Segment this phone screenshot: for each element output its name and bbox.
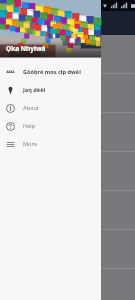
staticText: Ọka Nhyiwà (6, 44, 46, 53)
button[interactable]: Dh (0, 74, 135, 112)
button[interactable]: More (0, 135, 101, 153)
other: Flags (6, 68, 15, 77)
button[interactable]: G (0, 113, 135, 151)
staticText: b (20, 51, 24, 59)
button[interactable]: M (0, 191, 135, 229)
staticText: B (8, 49, 14, 60)
button[interactable]: About (0, 99, 101, 117)
button[interactable]: B (0, 35, 135, 73)
staticText: Help (23, 122, 36, 130)
button[interactable]: Flags (0, 63, 101, 81)
other: More (6, 140, 15, 149)
staticText: G (8, 127, 14, 138)
button[interactable]: P (0, 269, 135, 300)
button[interactable]: J (0, 152, 135, 190)
staticText: Paam (58, 18, 77, 28)
other: Location (6, 86, 15, 95)
staticText: Góòbrè mos clp dwèl (23, 68, 81, 76)
other: About (6, 104, 15, 113)
other: Help (6, 122, 15, 131)
staticText: About (23, 104, 39, 112)
staticText: Jaŋ dèèl (23, 86, 46, 94)
staticText: dh (25, 90, 33, 98)
button[interactable]: Help (0, 117, 101, 135)
button[interactable]: Nh (0, 230, 135, 268)
button[interactable]: Location (0, 81, 101, 99)
staticText: Dh (8, 88, 19, 99)
button[interactable]: Ọka Nhyiwà (0, 0, 101, 57)
staticText: More (23, 140, 37, 148)
